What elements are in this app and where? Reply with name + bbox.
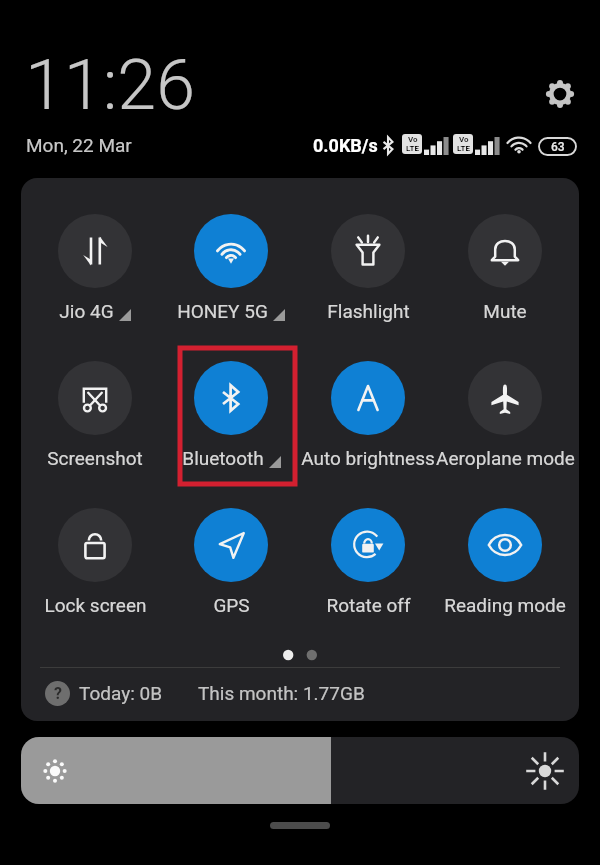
button[interactable]: Brightness (21, 737, 579, 804)
staticText: LTE (406, 144, 419, 153)
button[interactable]: Reading mode (420, 508, 579, 616)
staticText: Reading mode (444, 594, 566, 616)
staticText: Screenshot (47, 447, 143, 469)
staticText: LTE (457, 144, 470, 153)
staticText: Mute (483, 300, 527, 322)
button[interactable]: Mute (420, 214, 579, 322)
staticText: Auto brightness (301, 447, 435, 469)
staticText: Mon, 22 Mar (26, 134, 132, 156)
staticText: Today: 0B (79, 682, 162, 704)
button[interactable]: Jio 4G (21, 214, 180, 322)
button[interactable]: Aeroplane mode (420, 361, 579, 469)
button[interactable]: Screenshot (21, 361, 180, 469)
staticText: Lock screen (44, 594, 147, 616)
button[interactable]: ? (45, 675, 365, 711)
staticText: This month: 1.77GB (198, 682, 365, 704)
staticText: Flashlight (327, 300, 410, 322)
staticText: 0.0KB/s (313, 135, 378, 156)
button[interactable]: Rotate off (283, 508, 453, 616)
button[interactable]: Settings (538, 72, 582, 116)
button[interactable]: Flashlight (283, 214, 453, 322)
staticText: Aeroplane mode (436, 447, 575, 469)
staticText: 63 (551, 140, 565, 154)
button[interactable]: GPS (146, 508, 316, 616)
button[interactable]: HONEY 5G (146, 214, 316, 322)
staticText: Bluetooth (182, 447, 264, 469)
staticText: Rotate off (326, 594, 411, 616)
button[interactable]: Bluetooth (146, 361, 316, 469)
staticText: Jio 4G (59, 300, 114, 322)
staticText: HONEY 5G (177, 300, 268, 322)
button[interactable]: Lock screen (21, 508, 180, 616)
staticText: ? (54, 684, 62, 703)
staticText: GPS (213, 594, 250, 616)
staticText: 11:26 (25, 44, 196, 126)
button[interactable]: Auto brightness (283, 361, 453, 469)
staticText: Vo (459, 135, 469, 144)
staticText: Vo (408, 135, 418, 144)
